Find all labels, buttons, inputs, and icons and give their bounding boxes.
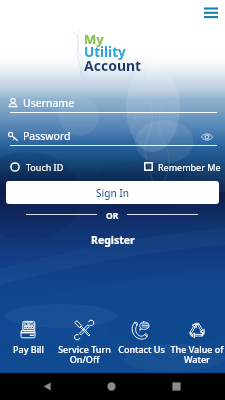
staticText: Pay Bill xyxy=(13,343,44,355)
staticText: Contact Us xyxy=(118,343,165,355)
button[interactable]: The Value of Water xyxy=(169,320,225,365)
button[interactable]: Pay Bill xyxy=(0,320,56,355)
button[interactable]: Sign In xyxy=(6,181,219,204)
staticText: Account xyxy=(84,56,142,75)
button[interactable]: Home xyxy=(107,382,116,391)
button[interactable]: Username xyxy=(8,96,217,110)
staticText: OR xyxy=(106,210,119,222)
button[interactable]: Menu xyxy=(201,4,221,21)
staticText: My xyxy=(84,30,104,48)
button[interactable]: Show password xyxy=(200,130,214,144)
button[interactable]: Contact Us xyxy=(113,320,169,355)
staticText: Remember Me xyxy=(158,161,221,173)
staticText: Register xyxy=(91,233,135,247)
button[interactable]: Recent apps xyxy=(172,382,181,391)
button[interactable]: Back xyxy=(43,382,52,391)
button[interactable]: Register xyxy=(85,232,141,248)
staticText: Sign In xyxy=(96,186,130,200)
staticText: Service Turn On/Off xyxy=(58,343,111,365)
staticText: Username xyxy=(23,96,75,110)
staticText: Touch ID xyxy=(26,161,64,173)
staticText: The Value of Water xyxy=(170,343,224,365)
staticText: Password xyxy=(23,129,71,143)
button[interactable]: Service Turn On/Off xyxy=(56,320,112,365)
button[interactable]: Password xyxy=(8,129,198,143)
staticText: Utility xyxy=(84,43,126,61)
button[interactable]: Touch ID xyxy=(10,160,64,173)
button[interactable]: Remember Me xyxy=(144,160,221,173)
